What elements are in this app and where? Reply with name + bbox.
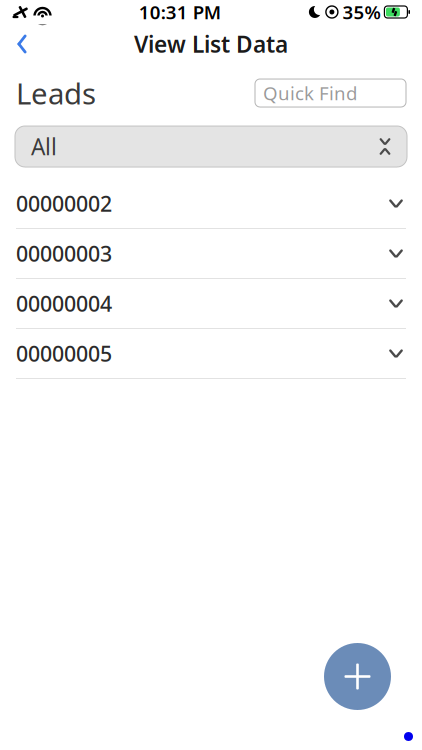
staticText: View List Data	[134, 29, 288, 59]
staticText: 10:31 PM	[139, 0, 221, 24]
staticText: Leads	[16, 73, 96, 112]
button[interactable]: 00000003	[0, 229, 422, 279]
button[interactable]: 00000004	[0, 279, 422, 329]
staticText: 35%	[342, 0, 380, 24]
staticText: Quick Find	[263, 81, 357, 105]
staticText: 00000002	[16, 189, 112, 218]
staticText: 00000005	[16, 339, 112, 368]
button[interactable]: 00000005	[0, 329, 422, 379]
button[interactable]: 00000002	[0, 179, 422, 229]
staticText: All	[31, 131, 57, 161]
button[interactable]: All	[15, 126, 407, 167]
staticText: 00000003	[16, 239, 112, 268]
button[interactable]: Back	[0, 24, 44, 64]
button[interactable]: Add	[324, 643, 391, 710]
button[interactable]: Quick Find	[255, 79, 406, 107]
staticText: 00000004	[16, 289, 112, 318]
